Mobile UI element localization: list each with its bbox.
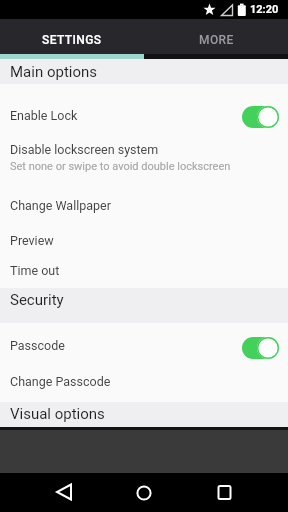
staticText: Security (10, 291, 64, 309)
button[interactable]: Disable lockscreen system (0, 136, 288, 180)
staticText: Visual options (10, 405, 105, 423)
staticText: Change Passcode (10, 374, 111, 389)
button[interactable]: Preview (0, 222, 288, 258)
button[interactable]: Change Wallpaper (0, 186, 288, 222)
staticText: SETTINGS (42, 33, 102, 47)
staticText: Main options (10, 63, 98, 81)
button[interactable]: Time out (0, 258, 288, 288)
button[interactable] (120, 473, 168, 512)
button[interactable]: Change Passcode (0, 368, 288, 402)
button[interactable] (40, 473, 88, 512)
staticText: Time out (10, 263, 60, 278)
staticText: Enable Lock (10, 108, 78, 123)
staticText: MORE (199, 33, 234, 47)
staticText: Change Wallpaper (10, 198, 111, 213)
button[interactable]: SETTINGS (0, 19, 144, 54)
button[interactable] (242, 106, 279, 128)
button[interactable] (242, 337, 279, 359)
button[interactable]: Passcode (0, 328, 288, 368)
button[interactable] (200, 473, 248, 512)
staticText: Passcode (10, 338, 65, 353)
button[interactable]: MORE (144, 19, 288, 54)
staticText: Disable lockscreen system (10, 142, 159, 157)
staticText: Preview (10, 233, 54, 248)
staticText: 12:20 (250, 3, 279, 16)
button[interactable]: Enable Lock (0, 96, 288, 136)
staticText: Set none or swipe to avoid double locksc… (10, 160, 231, 173)
